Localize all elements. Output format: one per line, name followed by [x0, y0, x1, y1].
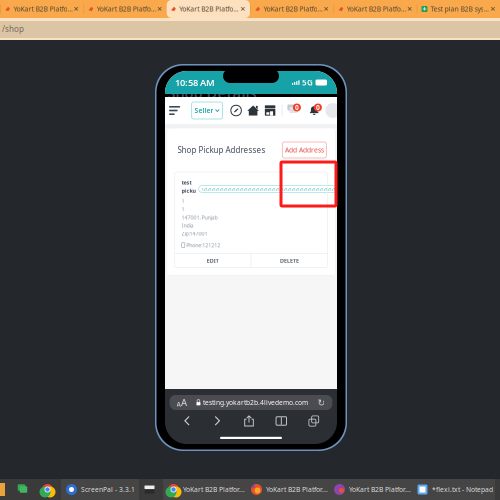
staticText: A	[177, 400, 181, 409]
button[interactable]: YoKart B2B Platfor...	[246, 479, 329, 500]
staticText: YoKart B2B Platfor...	[183, 485, 245, 494]
staticText: ✕	[240, 5, 246, 13]
staticText: EDIT	[207, 257, 219, 264]
staticText: Phone:121212	[186, 242, 220, 249]
button[interactable]: Reload	[317, 397, 325, 408]
button[interactable]: Seller	[192, 102, 223, 119]
staticText: picku	[182, 187, 196, 194]
staticText: ↻	[317, 397, 325, 408]
staticText: testing.yokartb2b.4livedemo.com	[203, 398, 308, 407]
staticText: 5G	[302, 77, 313, 88]
staticText: A	[181, 396, 187, 409]
button[interactable]: Notifications	[306, 101, 322, 119]
button[interactable]	[37, 479, 61, 500]
button[interactable]: Menu	[169, 101, 181, 119]
button[interactable]: Messages	[285, 101, 301, 119]
button[interactable]: Back	[183, 415, 192, 426]
button[interactable]: Dashboard	[228, 101, 245, 119]
button[interactable]	[13, 479, 37, 500]
staticText: DELETE	[280, 257, 299, 264]
button[interactable]: YoKart B2B Platform	[83, 0, 167, 18]
staticText: 1	[182, 206, 185, 213]
button[interactable]: *flexi.txt - Notepad	[412, 479, 495, 500]
button[interactable]: EDIT	[175, 254, 251, 268]
staticText: 1	[182, 198, 185, 205]
button[interactable]: ScreenPal - 3.3.1	[61, 479, 139, 500]
staticText: Shop Pickup Addresses	[178, 145, 266, 155]
staticText: /shop	[2, 24, 24, 34]
staticText: Shop Details	[168, 83, 257, 102]
staticText: 10:58 AM	[175, 76, 215, 89]
button[interactable]: Share	[243, 415, 254, 427]
staticText: YoKart B2B Platfor...	[266, 485, 328, 494]
button[interactable]: Page settings	[177, 396, 187, 409]
staticText: 0	[295, 103, 299, 112]
staticText: ✕	[157, 5, 163, 13]
staticText: ScreenPal - 3.3.1	[81, 485, 135, 494]
button[interactable]: +	[417, 0, 500, 18]
button[interactable]: YoKart B2B Platform	[167, 0, 250, 18]
staticText: YoKart B2B Platform	[347, 5, 406, 13]
button[interactable]: YoKart B2B Platfor...	[329, 479, 412, 500]
button[interactable]: Tabs	[308, 415, 319, 427]
button[interactable]	[139, 479, 163, 500]
staticText: 147001, Punjab	[182, 214, 218, 221]
staticText: 1212121212121212121212121212121212121212…	[202, 186, 348, 192]
button[interactable]: Forward	[213, 415, 222, 426]
staticText: Test plan B2B system	[430, 5, 489, 13]
staticText: India	[182, 222, 194, 229]
button[interactable]: Shop	[262, 101, 279, 119]
staticText: 0	[316, 103, 320, 112]
staticText: Seller	[194, 106, 213, 115]
button[interactable]: Add Address	[282, 142, 326, 158]
button[interactable]: YoKart B2B Platform	[250, 0, 333, 18]
staticText: ✕	[323, 5, 329, 13]
staticText: YoKart B2B Platform	[97, 5, 156, 13]
staticText: Zip:147001	[182, 230, 208, 237]
button[interactable]: Account	[325, 103, 340, 118]
staticText: +	[422, 5, 426, 13]
button[interactable]: Home	[245, 101, 262, 119]
button[interactable]: DELETE	[251, 254, 327, 268]
staticText: YoKart B2B Platform	[179, 5, 239, 13]
staticText: YoKart B2B Platform	[263, 5, 322, 13]
staticText: *flexi.txt - Notepad	[432, 485, 493, 494]
button[interactable]: Bookmarks	[276, 415, 287, 427]
staticText: test	[182, 179, 192, 186]
staticText: ✕	[490, 5, 496, 13]
staticText: YoKart B2B Platfor...	[349, 485, 411, 494]
staticText: ✕	[73, 5, 79, 13]
staticText: YoKart B2B Platform	[13, 5, 72, 13]
staticText: ✕	[407, 5, 413, 13]
staticText: Add Address	[285, 146, 324, 154]
button[interactable]: YoKart B2B Platfor...	[163, 479, 246, 500]
button[interactable]: YoKart B2B Platform	[333, 0, 417, 18]
button[interactable]: YoKart B2B Platform	[0, 0, 83, 18]
